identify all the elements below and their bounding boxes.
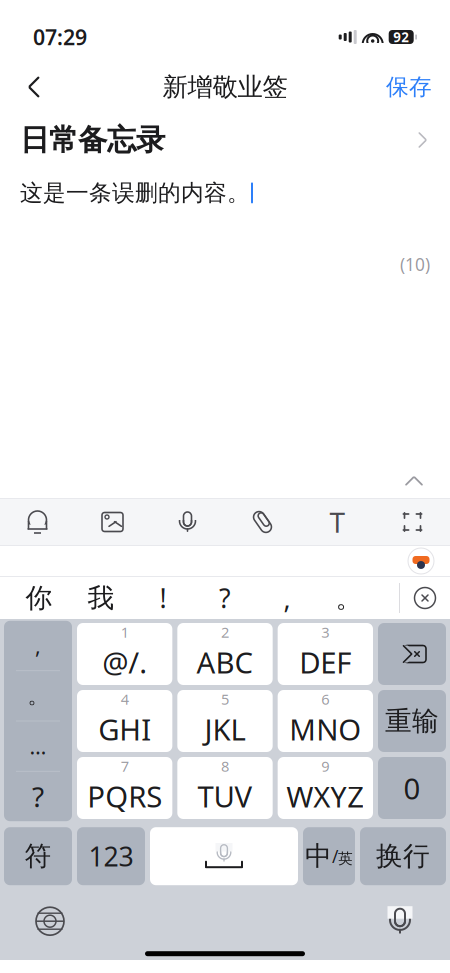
- button[interactable]: 符: [4, 827, 72, 885]
- button[interactable]: 换行: [360, 827, 446, 885]
- button[interactable]: 全屏: [375, 499, 450, 545]
- button[interactable]: 收起: [392, 464, 436, 498]
- staticText: 92: [393, 28, 409, 46]
- staticText: ?: [219, 580, 231, 616]
- staticText: 123: [88, 838, 133, 874]
- staticText: 8: [221, 756, 229, 776]
- button[interactable]: 输入法助手: [406, 546, 436, 576]
- button[interactable]: 8: [177, 757, 273, 819]
- staticText: T: [329, 503, 345, 541]
- button[interactable]: !: [132, 577, 194, 619]
- staticText: PQRS: [87, 777, 162, 816]
- staticText: 4: [121, 689, 129, 709]
- button[interactable]: 空格: [150, 827, 298, 885]
- staticText: WXYZ: [286, 777, 364, 816]
- staticText: ,: [283, 580, 290, 616]
- button[interactable]: 。: [4, 671, 72, 721]
- button[interactable]: 录音: [150, 499, 225, 545]
- button[interactable]: 附件: [225, 499, 300, 545]
- staticText: 3: [321, 622, 329, 642]
- button[interactable]: 提醒: [0, 499, 75, 545]
- button[interactable]: 2: [177, 623, 273, 685]
- staticText: JKL: [204, 710, 245, 749]
- button[interactable]: 图片: [75, 499, 150, 545]
- button[interactable]: 保存: [380, 65, 438, 109]
- staticText: ,: [35, 631, 41, 660]
- staticText: ABC: [196, 643, 253, 682]
- staticText: 9: [321, 756, 329, 776]
- staticText: 7: [121, 756, 129, 776]
- button[interactable]: 5: [177, 690, 273, 752]
- button[interactable]: 。: [318, 577, 380, 619]
- button[interactable]: 文字格式: [300, 499, 375, 545]
- button[interactable]: ?: [194, 577, 256, 619]
- button[interactable]: 日常备忘录: [0, 113, 450, 167]
- staticText: 0: [403, 768, 420, 807]
- staticText: 。: [27, 683, 48, 709]
- staticText: 5: [221, 689, 229, 709]
- staticText: 07:29: [33, 23, 87, 51]
- staticText: …: [29, 732, 46, 760]
- staticText: 2: [221, 622, 229, 642]
- button[interactable]: 清除: [400, 577, 450, 619]
- staticText: MNO: [289, 710, 361, 749]
- staticText: 你: [25, 582, 52, 614]
- staticText: TUV: [197, 777, 252, 816]
- staticText: ?: [32, 778, 44, 815]
- button[interactable]: ,: [256, 577, 318, 619]
- button[interactable]: 7: [77, 757, 172, 819]
- staticText: DEF: [299, 643, 351, 682]
- button[interactable]: …: [4, 721, 72, 771]
- button[interactable]: 返回: [12, 65, 56, 109]
- button[interactable]: ,: [4, 621, 72, 670]
- staticText: 。: [335, 582, 362, 614]
- button[interactable]: 删除: [378, 623, 446, 685]
- staticText: 换行: [376, 840, 430, 873]
- button[interactable]: 你: [8, 577, 70, 619]
- staticText: !: [159, 580, 166, 616]
- button[interactable]: 9: [278, 757, 373, 819]
- staticText: GHI: [98, 710, 151, 749]
- staticText: @/.: [102, 643, 147, 682]
- staticText: 日常备忘录: [20, 122, 165, 158]
- staticText: (10): [400, 253, 430, 276]
- button[interactable]: 3: [278, 623, 373, 685]
- staticText: /: [332, 845, 338, 868]
- staticText: 重输: [385, 705, 439, 737]
- staticText: 中: [305, 840, 332, 873]
- button[interactable]: 中英切换: [303, 827, 355, 885]
- staticText: 1: [121, 622, 129, 642]
- staticText: 符: [24, 840, 51, 873]
- button[interactable]: 重输: [378, 690, 446, 752]
- button[interactable]: 1: [77, 623, 172, 685]
- button[interactable]: 0: [378, 757, 446, 819]
- button[interactable]: 切换键盘: [26, 899, 74, 943]
- button[interactable]: 6: [278, 690, 373, 752]
- staticText: 保存: [386, 73, 432, 101]
- staticText: 我: [87, 582, 114, 614]
- staticText: 新增敬业签: [162, 71, 287, 102]
- button[interactable]: 语音输入: [376, 899, 424, 943]
- button[interactable]: ?: [4, 772, 72, 821]
- button[interactable]: 我: [70, 577, 132, 619]
- button[interactable]: 4: [77, 690, 172, 752]
- staticText: 这是一条误删的内容。: [20, 179, 250, 207]
- staticText: 英: [338, 850, 353, 868]
- staticText: 6: [321, 689, 329, 709]
- button[interactable]: 123: [77, 827, 145, 885]
